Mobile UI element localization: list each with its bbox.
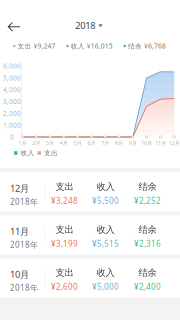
staticText: 2,000 [3,109,21,118]
staticText: 9月 [129,139,137,147]
staticText: 4,000 [3,85,21,94]
staticText: 1月 [18,139,26,147]
button[interactable]: 2018 [67,14,111,37]
button[interactable]: Back [0,11,28,39]
staticText: 12月 [169,139,180,147]
staticText: 10月 [141,139,152,147]
staticText: 支出 [44,149,58,157]
staticText: 结余 [138,224,156,235]
staticText: ¥3,248 [51,195,78,206]
staticText: 结余 [138,267,156,278]
staticText: 支出 [55,267,73,278]
staticText: 4月 [60,139,68,147]
staticText: 1,000 [3,121,21,130]
staticText: ¥3,199 [51,238,78,249]
staticText: 结余 ¥6,768 [128,42,166,50]
staticText: 2月 [32,139,40,147]
staticText: 5,000 [3,73,21,82]
staticText: 结余 [138,181,156,192]
staticText: 支出 [55,181,73,192]
staticText: ¥5,500 [92,195,119,206]
staticText: 8月 [115,139,123,147]
staticText: 3月 [46,139,54,147]
staticText: ¥2,600 [51,281,78,292]
staticText: 6月 [87,139,95,147]
staticText: ¥5,515 [92,238,119,249]
staticText: 2018 [75,19,95,32]
staticText: 收入 [96,224,114,235]
staticText: 收入 ¥16,015 [71,42,113,50]
staticText: 11月 [155,139,166,147]
staticText: 收入 [96,181,114,192]
staticText: 支出 ¥9,247 [17,42,55,50]
staticText: 收入 [96,267,114,278]
button[interactable]: 12月 [0,172,180,211]
button[interactable]: 10月 [0,258,180,297]
staticText: 5月 [74,139,82,147]
staticText: 0 [10,133,14,141]
staticText: ¥2,316 [134,238,161,249]
staticText: ¥2,252 [134,195,161,206]
staticText: 收入 [20,149,34,157]
staticText: 3,000 [3,97,21,106]
staticText: 11月 [10,225,29,237]
staticText: 12月 [10,182,29,194]
staticText: 2018年 [10,239,38,250]
staticText: ¥5,000 [92,281,119,292]
staticText: 6,000 [3,62,21,70]
staticText: 7月 [101,139,109,147]
staticText: ¥2,400 [134,281,161,292]
staticText: 支出 [55,224,73,235]
staticText: 2018年 [10,282,38,293]
staticText: 2018年 [10,196,38,207]
button[interactable]: 11月 [0,215,180,254]
staticText: 10月 [10,268,29,280]
